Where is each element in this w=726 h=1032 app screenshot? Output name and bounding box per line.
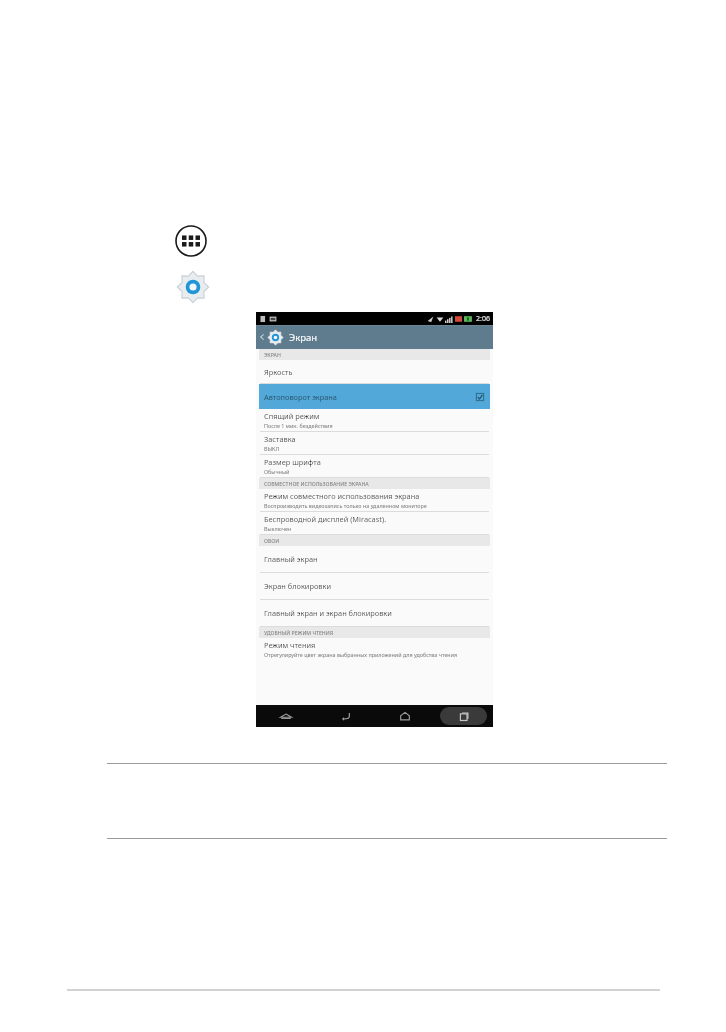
staticText: Спящий режим	[264, 411, 320, 421]
button[interactable]: Back	[256, 325, 493, 349]
staticText: ОБОИ	[264, 537, 280, 544]
staticText: Отрегулируйте цвет экрана выбранных прил…	[264, 651, 458, 658]
other: Back	[258, 333, 266, 341]
staticText: ВЫКЛ	[264, 445, 280, 452]
button[interactable]: Беспроводной дисплей (Miracast).	[256, 512, 493, 535]
staticText: Экран	[289, 331, 318, 344]
button[interactable]: Заставка	[256, 432, 493, 455]
staticText: Экран блокировки	[264, 581, 331, 591]
button[interactable]: Back	[316, 705, 375, 727]
staticText: После 1 мин. бездействия	[264, 422, 333, 429]
staticText: Главный экран	[264, 554, 318, 564]
staticText: УДОБНЫЙ РЕЖИМ ЧТЕНИЯ	[264, 629, 334, 636]
button[interactable]: Режим совместного использования экрана	[256, 489, 493, 512]
button[interactable]: Режим чтения	[256, 638, 493, 660]
staticText: Заставка	[264, 434, 296, 444]
staticText: Яркость	[264, 367, 293, 377]
button[interactable]: Яркость	[256, 360, 493, 384]
staticText: Обычный	[264, 468, 290, 475]
staticText: СОВМЕСТНОЕ ИСПОЛЬЗОВАНИЕ ЭКРАНА	[264, 480, 369, 487]
staticText: Автоповорот экрана	[264, 392, 337, 402]
button[interactable]: Apps	[256, 705, 316, 727]
staticText: ЭКРАН	[264, 351, 281, 358]
staticText: Размер шрифта	[264, 457, 321, 467]
button[interactable]: Главный экран и экран блокировки	[256, 600, 493, 627]
staticText: Режим совместного использования экрана	[264, 491, 420, 501]
other: Recents	[440, 707, 487, 725]
button[interactable]: Спящий режим	[256, 409, 493, 432]
button[interactable]: Recents	[434, 705, 493, 727]
staticText: Выключен	[264, 525, 292, 532]
button[interactable]: Экран блокировки	[256, 573, 493, 600]
button[interactable]: Автоповорот экрана	[259, 384, 490, 409]
button[interactable]: Главный экран	[256, 546, 493, 573]
button[interactable]: Home	[375, 705, 434, 727]
staticText: Беспроводной дисплей (Miracast).	[264, 514, 387, 524]
staticText: Режим чтения	[264, 640, 316, 650]
button[interactable]: Размер шрифта	[256, 455, 493, 478]
staticText: Главный экран и экран блокировки	[264, 608, 392, 618]
staticText: Воспроизводить видеозапись только на уда…	[264, 502, 427, 509]
staticText: 2:06	[476, 314, 490, 324]
